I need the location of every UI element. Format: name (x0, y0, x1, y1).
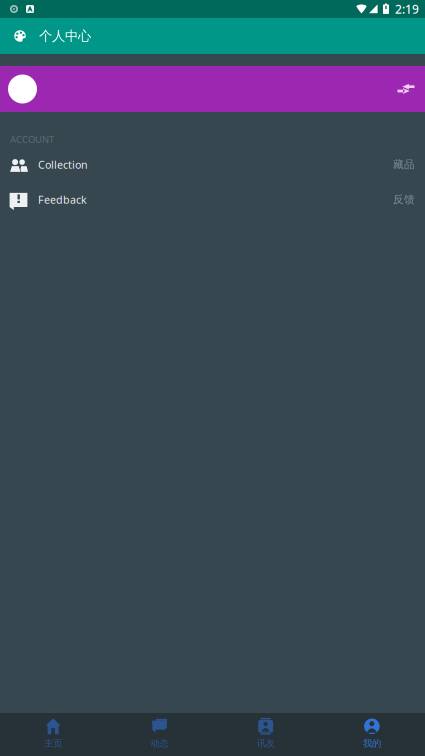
button[interactable]: 主页 (0, 713, 106, 756)
staticText: 我的 (363, 738, 381, 749)
staticText: 主页 (44, 738, 62, 749)
staticText: 藏品 (393, 158, 415, 171)
staticText: 讯友 (257, 738, 275, 749)
button[interactable]: Feedback (0, 182, 425, 217)
staticText: Feedback (38, 192, 87, 207)
staticText: Collection (38, 157, 88, 172)
staticText: 2:19 (395, 1, 419, 17)
button[interactable]: 我的 (319, 713, 425, 756)
button[interactable]: 动态 (106, 713, 212, 756)
button[interactable]: 讯友 (212, 713, 319, 756)
button[interactable]: Switch account (397, 71, 425, 107)
staticText: 反馈 (393, 193, 415, 206)
staticText: 个人中心 (39, 28, 91, 44)
staticText: ACCOUNT (10, 133, 54, 146)
button[interactable]: Collection (0, 147, 425, 182)
staticText: 动态 (150, 738, 168, 749)
